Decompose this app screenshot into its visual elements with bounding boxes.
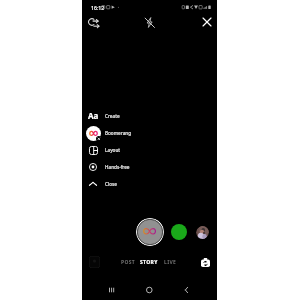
staticText: Create bbox=[105, 113, 120, 119]
button[interactable]: Flip camera bbox=[199, 256, 212, 269]
button[interactable]: Close bbox=[199, 14, 215, 30]
button[interactable]: Flash off bbox=[141, 14, 157, 30]
button[interactable]: Layout bbox=[85, 141, 140, 158]
staticText: Layout bbox=[105, 147, 121, 153]
staticText: STORY bbox=[140, 259, 158, 266]
button[interactable]: Aa bbox=[85, 107, 140, 124]
staticText: 16:12 bbox=[91, 4, 105, 11]
staticText: Aa bbox=[88, 110, 99, 121]
staticText: Close bbox=[105, 181, 117, 187]
button[interactable]: Face effect bbox=[196, 226, 209, 239]
button[interactable]: Close bbox=[85, 175, 140, 192]
staticText: POST bbox=[121, 259, 136, 266]
button[interactable]: Switch camera bbox=[85, 14, 101, 30]
button[interactable]: Gallery bbox=[89, 256, 100, 268]
button[interactable]: Hands-free bbox=[85, 158, 140, 175]
button[interactable]: Boomerang bbox=[85, 124, 140, 141]
staticText: Boomerang bbox=[105, 130, 132, 136]
staticText: Hands-free bbox=[105, 164, 130, 170]
staticText: LIVE bbox=[164, 259, 177, 266]
button[interactable]: Capture bbox=[136, 218, 164, 246]
button[interactable]: Green effect bbox=[171, 224, 187, 240]
